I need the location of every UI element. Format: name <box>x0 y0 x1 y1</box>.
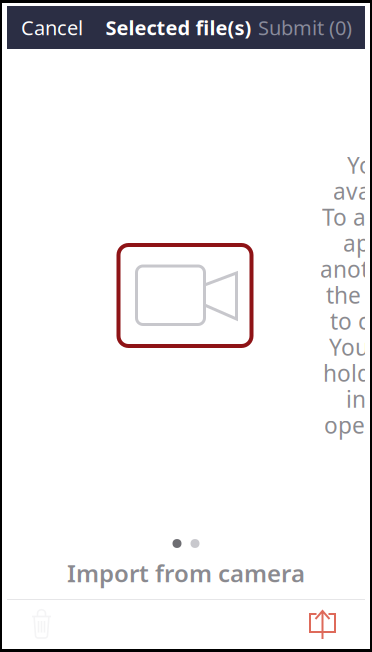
staticText: to close it. <box>330 306 372 336</box>
button[interactable]: Upload <box>280 600 365 645</box>
staticText: open. <box>324 410 372 440</box>
staticText: in a different <box>346 384 372 414</box>
button[interactable]: Cancel <box>7 6 93 49</box>
button[interactable]: Import from camera <box>118 245 251 346</box>
staticText: available right now. <box>333 176 372 206</box>
staticText: the uses the camera <box>326 280 372 310</box>
staticText: To access it, close the <box>322 202 372 232</box>
staticText: Submit (0) <box>258 14 352 41</box>
staticText: Selected file(s) <box>105 14 251 41</box>
staticText: hold your phone <box>323 358 372 388</box>
staticText: app and open <box>343 228 372 258</box>
staticText: You might need to <box>329 332 372 362</box>
button[interactable]: Submit (0) <box>254 6 365 49</box>
staticText: Cancel <box>21 14 83 41</box>
staticText: Import from camera <box>67 557 305 589</box>
staticText: Your camera is not <box>347 150 372 180</box>
staticText: another application <box>320 254 372 284</box>
